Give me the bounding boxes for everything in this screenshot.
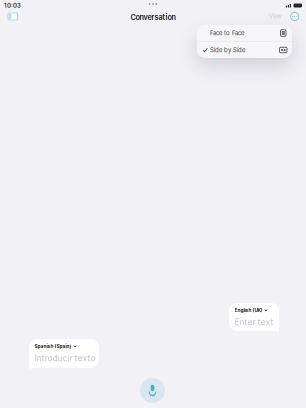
staticText: 10:03 [4, 2, 21, 9]
button[interactable]: Face to Face [197, 25, 292, 41]
staticText: Conversation [130, 13, 175, 22]
button[interactable]: Side by Side [197, 42, 292, 58]
button[interactable]: Toggle sidebar [5, 10, 21, 23]
staticText: Introducir texto [34, 353, 95, 363]
staticText: English (UK) [234, 307, 262, 313]
button[interactable]: Start listening [140, 378, 165, 403]
staticText: Spanish (Spain) [34, 343, 71, 349]
staticText: Side by Side [210, 46, 245, 54]
staticText: View [269, 13, 282, 20]
staticText: Enter text [234, 317, 273, 327]
staticText: Face to Face [210, 29, 244, 37]
button[interactable]: View options [266, 9, 301, 23]
